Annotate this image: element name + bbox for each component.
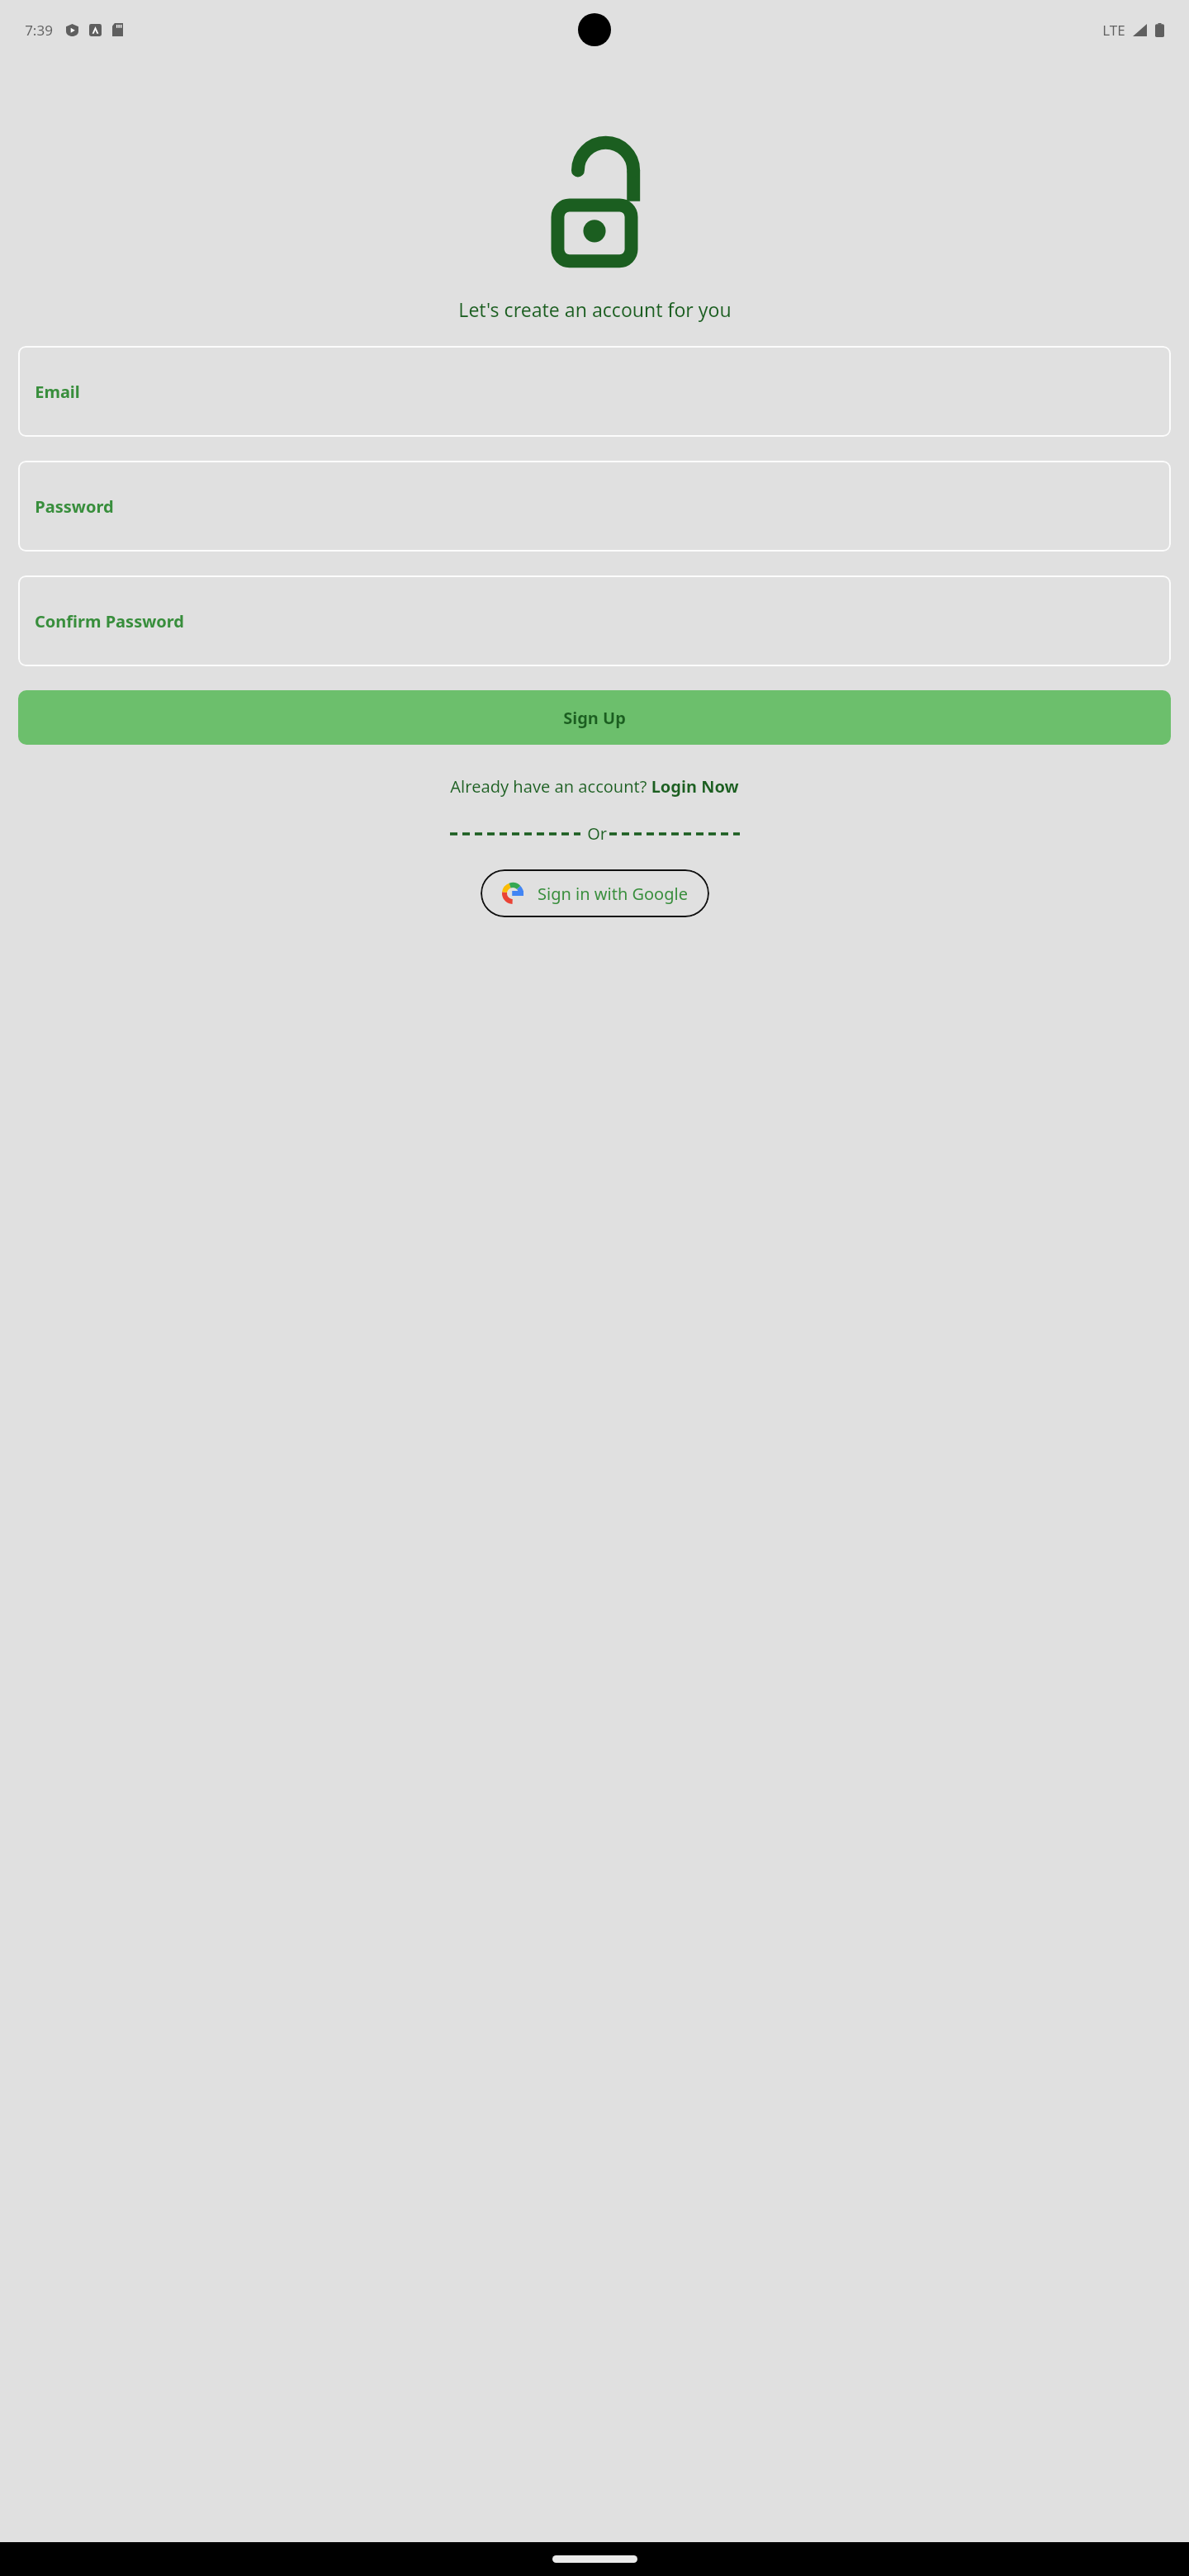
button[interactable]: Password [18, 461, 1171, 552]
staticText: Already have an account? Login Now [450, 775, 739, 798]
staticText: Sign Up [563, 707, 626, 729]
button[interactable]: Sign Up [18, 690, 1171, 745]
staticText: Email [35, 381, 80, 403]
button[interactable]: Sign in with Google [481, 869, 709, 917]
staticText: Confirm Password [35, 610, 184, 632]
button[interactable]: Confirm Password [18, 575, 1171, 666]
button[interactable]: Email [18, 346, 1171, 437]
staticText: Password [35, 495, 114, 518]
button[interactable]: Already have an account? Login Now [440, 770, 749, 803]
staticText: LTE [1102, 21, 1125, 40]
staticText: 7:39 [25, 21, 53, 40]
staticText: Sign in with Google [538, 883, 688, 905]
staticText: Or [580, 822, 609, 845]
staticText: Let's create an account for you [458, 296, 732, 322]
other: Unlocked padlock [546, 140, 643, 268]
